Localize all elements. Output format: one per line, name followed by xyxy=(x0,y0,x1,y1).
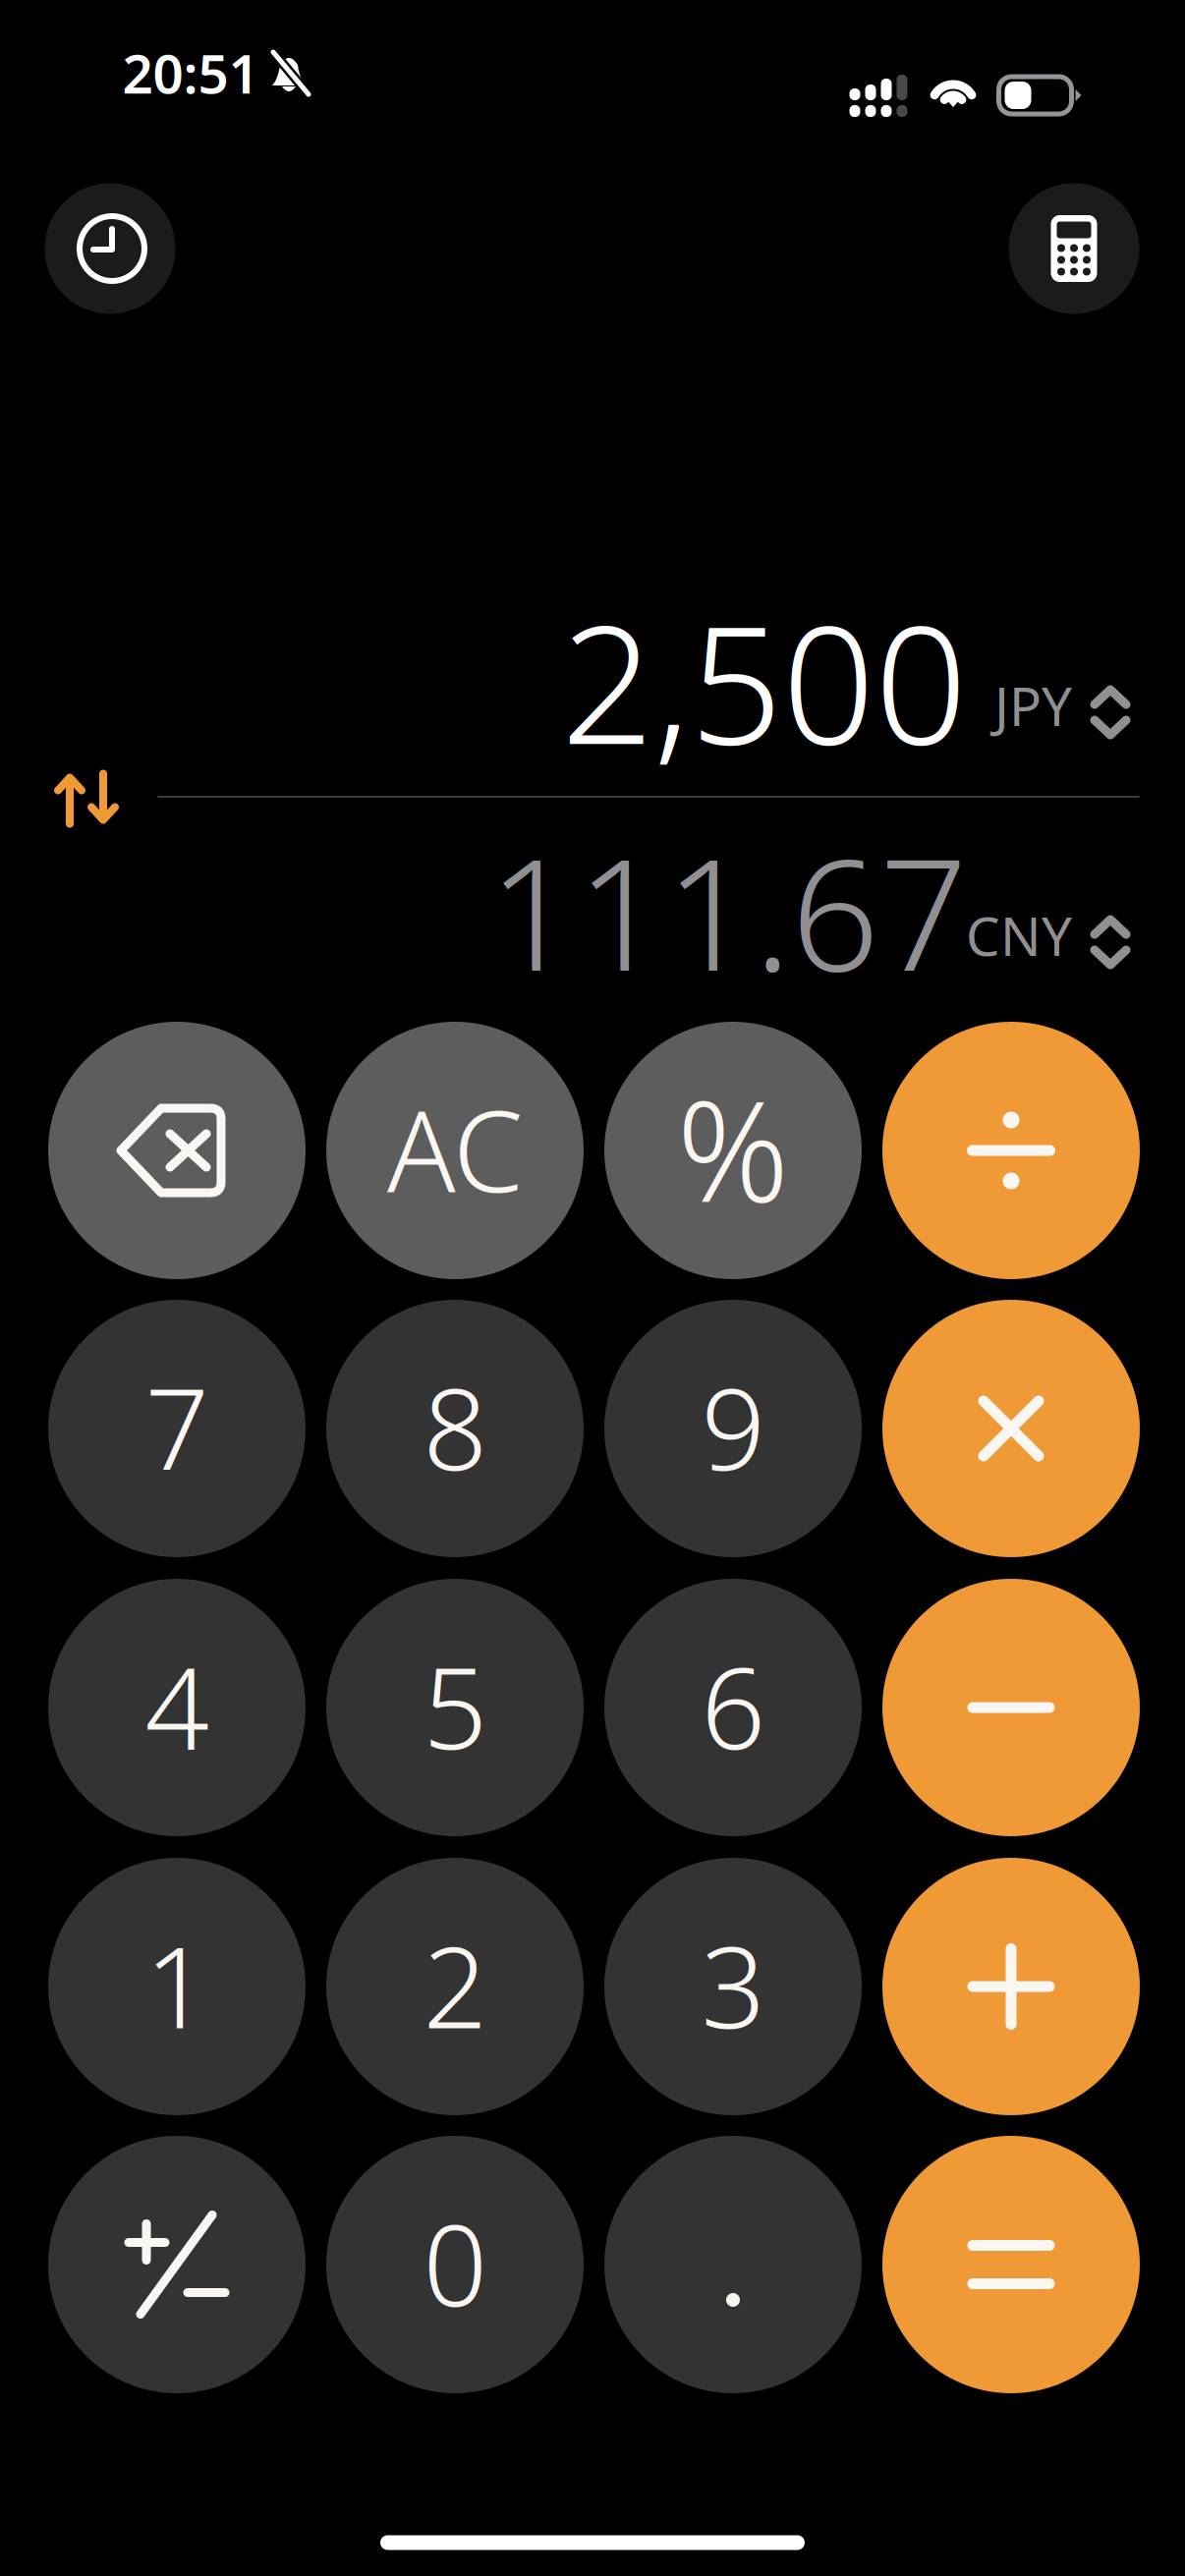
staticText: 20:51 xyxy=(122,37,259,108)
button[interactable]: Plus minus xyxy=(48,2136,306,2393)
button[interactable]: Decimal point xyxy=(604,2136,862,2393)
button[interactable]: 3 xyxy=(604,1858,862,2115)
button[interactable]: All clear xyxy=(326,1022,584,1279)
button[interactable]: Percent xyxy=(604,1022,862,1279)
staticText: 3 xyxy=(701,1910,765,2059)
staticText: 8 xyxy=(423,1352,487,1501)
staticText: 1 xyxy=(145,1910,209,2059)
button[interactable]: 8 xyxy=(326,1300,584,1557)
button[interactable]: Divide xyxy=(882,1022,1140,1279)
button[interactable]: 2 xyxy=(326,1858,584,2115)
staticText: CNY xyxy=(966,899,1072,971)
button[interactable]: 6 xyxy=(604,1579,862,1836)
staticText: AC xyxy=(387,1074,523,1223)
button[interactable]: Equals xyxy=(882,2136,1140,2393)
staticText: 5 xyxy=(423,1631,487,1780)
button[interactable]: Add xyxy=(882,1858,1140,2115)
button[interactable]: Recents xyxy=(45,183,175,314)
button[interactable]: From amount 2,500 JPY xyxy=(148,612,1131,750)
staticText: JPY xyxy=(994,669,1072,741)
button[interactable]: 9 xyxy=(604,1300,862,1557)
button[interactable]: Calculator xyxy=(1009,183,1139,314)
button[interactable]: 7 xyxy=(48,1300,306,1557)
staticText: 0 xyxy=(423,2188,487,2337)
staticText: 111.67 xyxy=(488,808,968,1013)
button[interactable]: To amount 111.67 CNY xyxy=(148,842,1131,980)
button[interactable]: Swap currencies xyxy=(39,756,134,841)
button[interactable]: 0 xyxy=(326,2136,584,2393)
staticText: 2,500 xyxy=(561,573,967,789)
staticText: 2 xyxy=(423,1910,487,2059)
button[interactable]: Delete xyxy=(48,1022,306,1279)
staticText: % xyxy=(677,1056,790,1241)
button[interactable]: Multiply xyxy=(882,1300,1140,1557)
staticText: 9 xyxy=(701,1352,765,1501)
staticText: 6 xyxy=(701,1631,765,1780)
button[interactable]: 1 xyxy=(48,1858,306,2115)
button[interactable]: 4 xyxy=(48,1579,306,1836)
staticText: 4 xyxy=(145,1631,209,1780)
button[interactable]: Subtract xyxy=(882,1579,1140,1836)
button[interactable]: 5 xyxy=(326,1579,584,1836)
staticText: 7 xyxy=(145,1352,209,1501)
